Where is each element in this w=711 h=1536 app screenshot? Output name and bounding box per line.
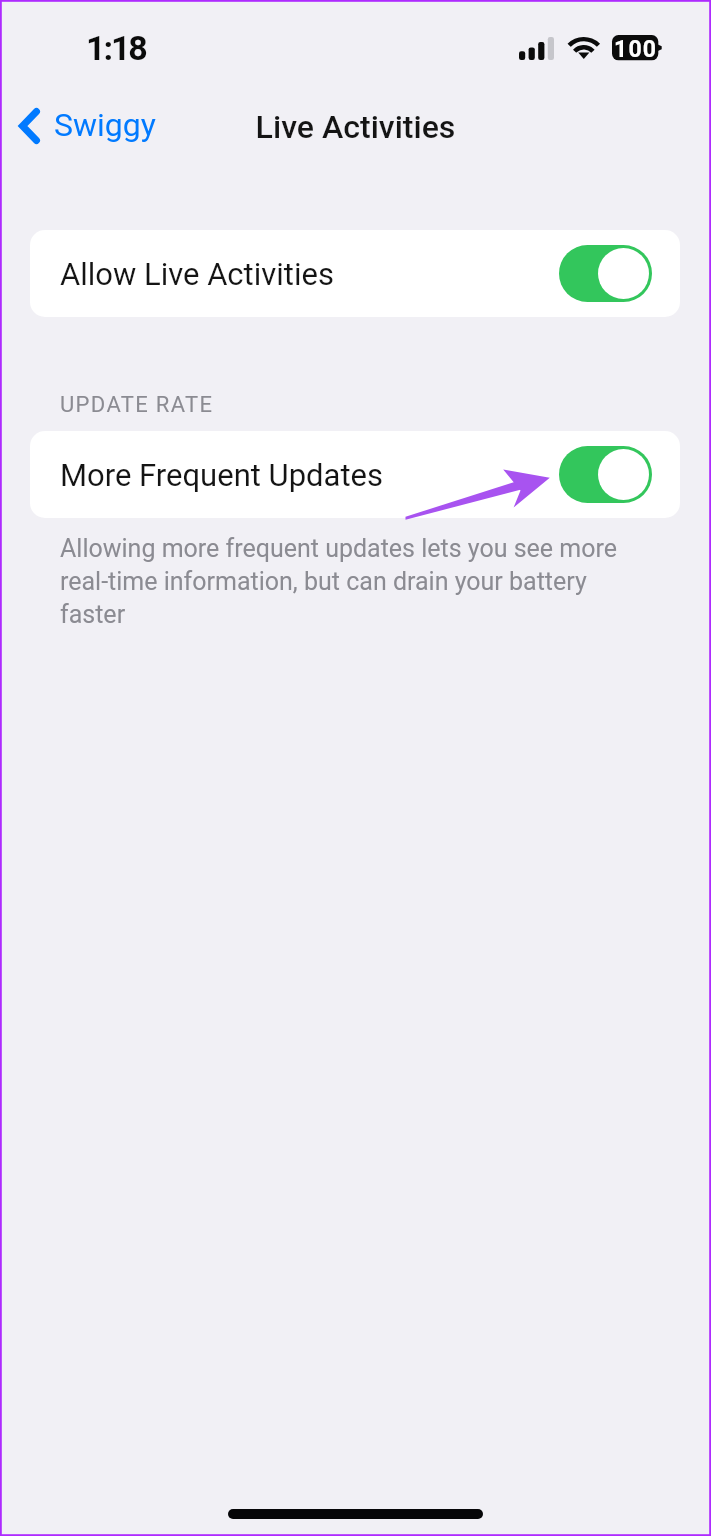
button[interactable]: More Frequent Updates <box>30 431 680 518</box>
button[interactable]: Toggle setting on <box>559 446 652 503</box>
staticText: 100 <box>614 36 658 63</box>
staticText: More Frequent Updates <box>60 457 384 493</box>
other: Wi-Fi <box>566 33 602 62</box>
button[interactable]: Back <box>6 101 156 151</box>
button[interactable]: Allow Live Activities <box>30 230 680 317</box>
staticText: UPDATE RATE <box>60 392 214 418</box>
staticText: 1:18 <box>86 28 146 68</box>
staticText: Allow Live Activities <box>60 256 334 292</box>
other: Back <box>16 108 40 144</box>
staticText: Swiggy <box>54 106 156 144</box>
other: Cellular signal <box>519 35 555 60</box>
other: Battery 100 percent <box>612 35 664 61</box>
staticText: Live Activities <box>0 108 711 146</box>
staticText: Allowing more frequent updates lets you … <box>60 534 625 629</box>
button[interactable]: Toggle setting on <box>559 245 652 302</box>
